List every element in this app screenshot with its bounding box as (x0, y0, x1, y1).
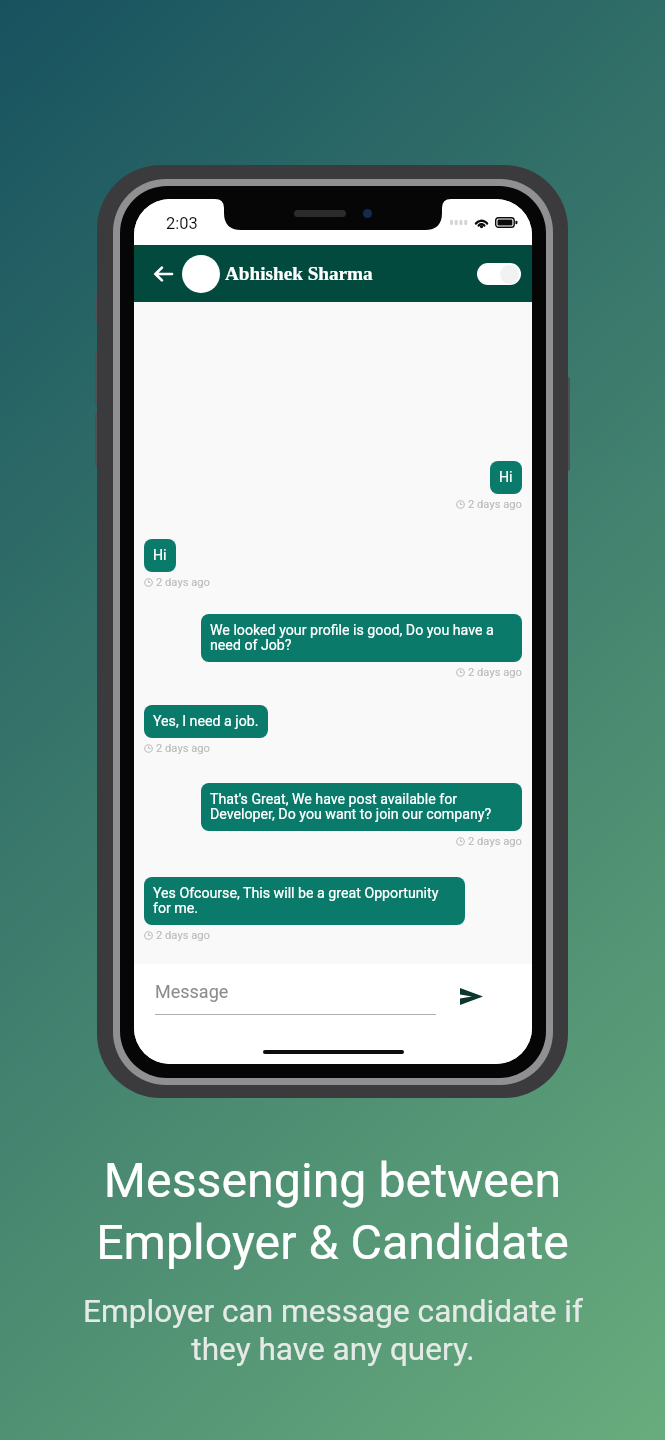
staticText: 2 days ago (468, 666, 522, 679)
staticText: 2 days ago (468, 835, 522, 848)
staticText: 2:03 (166, 214, 198, 233)
staticText: Hi (499, 469, 513, 486)
button[interactable]: Back (149, 260, 177, 288)
button[interactable]: Hi (490, 461, 522, 494)
staticText: 2 days ago (156, 742, 210, 755)
button[interactable]: We looked your profile is good, Do you h… (201, 614, 522, 662)
staticText: 2 days ago (156, 929, 210, 942)
staticText: 2 days ago (156, 576, 210, 589)
staticText: That's Great, We have post available for… (210, 791, 513, 823)
staticText: 2 days ago (468, 498, 522, 511)
button[interactable]: Hi (144, 539, 176, 572)
staticText: Employer can message candidate if they h… (83, 1293, 583, 1368)
staticText: Abhishek Sharma (225, 263, 373, 284)
button[interactable]: Toggle online status (477, 263, 521, 285)
staticText: Messenging between Employer & Candidate (96, 1152, 569, 1271)
staticText: Yes Ofcourse, This will be a great Oppor… (153, 885, 456, 917)
button[interactable]: Yes, I need a job. (144, 705, 268, 738)
staticText: Yes, I need a job. (153, 713, 259, 730)
staticText: We looked your profile is good, Do you h… (210, 622, 513, 654)
button[interactable]: Send (454, 979, 488, 1013)
staticText: Hi (153, 547, 167, 564)
staticText: Message (155, 981, 229, 1002)
button[interactable]: That's Great, We have post available for… (201, 783, 522, 831)
button[interactable]: Yes Ofcourse, This will be a great Oppor… (144, 877, 465, 925)
